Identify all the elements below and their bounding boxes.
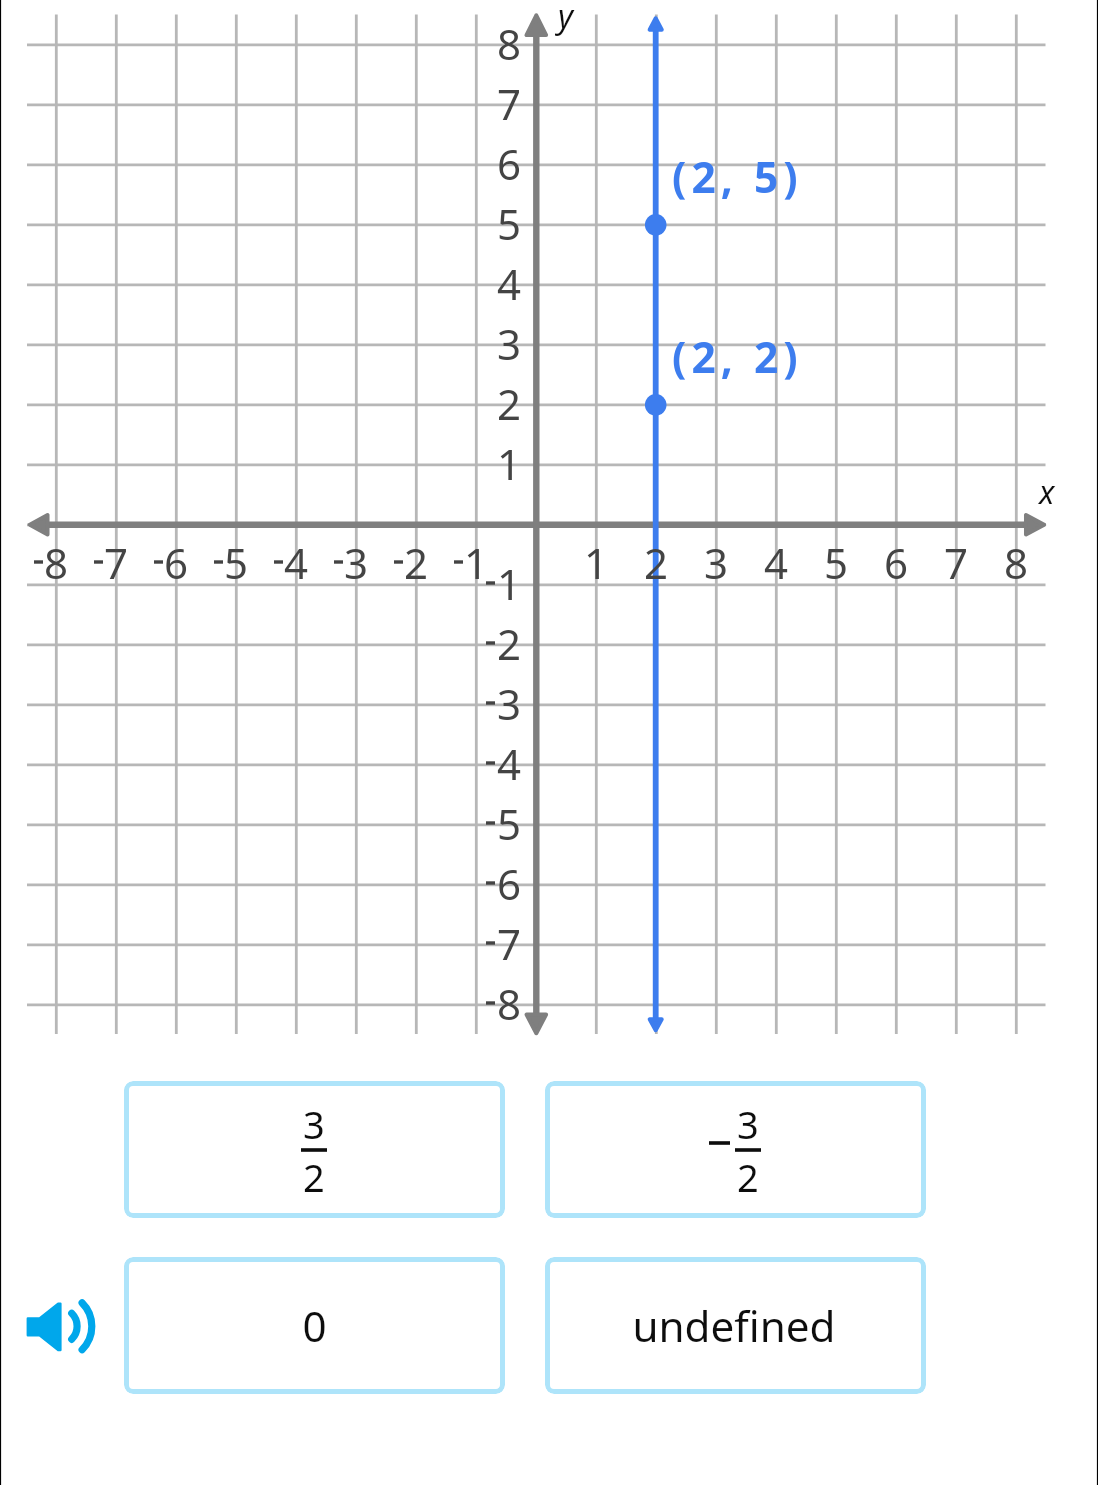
staticText: 6 — [884, 534, 908, 591]
staticText: 2 — [737, 1151, 759, 1203]
staticText: 6 — [164, 534, 188, 591]
staticText: 7 — [497, 915, 521, 972]
staticText: 6 — [497, 855, 521, 912]
staticText: 8 — [497, 975, 521, 1032]
staticText: 6 — [497, 135, 521, 192]
staticText: 1 — [497, 555, 521, 612]
staticText: 1 — [464, 534, 488, 591]
staticText: 5 — [497, 795, 521, 852]
staticText: 5 — [497, 195, 521, 252]
staticText: 2 — [303, 1151, 325, 1203]
staticText: 4 — [284, 534, 308, 591]
staticText: 7 — [497, 75, 521, 132]
staticText: 8 — [1004, 534, 1028, 591]
staticText: 3 — [497, 315, 521, 372]
staticText: 2 — [497, 375, 521, 432]
staticText: 0 — [302, 1297, 327, 1354]
staticText: 3 — [303, 1098, 325, 1150]
staticText: 7 — [944, 534, 968, 591]
staticText: 3 — [737, 1098, 759, 1150]
staticText: 3 — [704, 534, 728, 591]
button[interactable] — [124, 1081, 505, 1218]
staticText: 8 — [497, 15, 521, 72]
staticText: 1 — [497, 435, 521, 492]
staticText: 4 — [764, 534, 788, 591]
staticText: (2, 2) — [672, 328, 803, 386]
staticText: 4 — [497, 255, 521, 312]
staticText: 7 — [104, 534, 128, 591]
staticText: 5 — [224, 534, 248, 591]
staticText: 2 — [497, 615, 521, 672]
staticText: 2 — [404, 534, 428, 591]
staticText: 1 — [584, 534, 608, 591]
button[interactable] — [545, 1081, 926, 1218]
staticText: 3 — [497, 675, 521, 732]
staticText: 8 — [44, 534, 68, 591]
staticText: 2 — [644, 534, 668, 591]
button[interactable]: Listen to the question — [20, 1294, 102, 1360]
staticText: y — [558, 0, 573, 38]
staticText: (2, 5) — [672, 148, 803, 206]
staticText: 3 — [344, 534, 368, 591]
button[interactable] — [124, 1257, 505, 1394]
staticText: 5 — [824, 534, 848, 591]
staticText: 4 — [497, 735, 521, 792]
staticText: undefined — [632, 1297, 836, 1354]
button[interactable] — [545, 1257, 926, 1394]
staticText: x — [1039, 470, 1055, 514]
